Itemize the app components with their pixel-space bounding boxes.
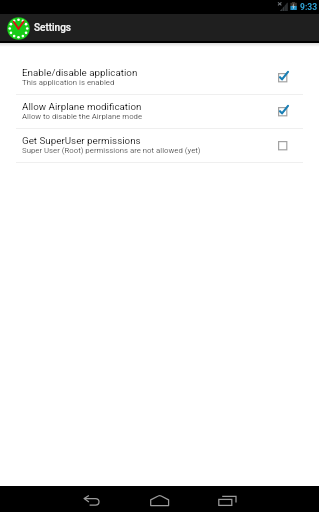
- button[interactable]: Toggle: [278, 136, 296, 154]
- staticText: Settings: [34, 22, 72, 34]
- staticText: 9:33: [300, 2, 318, 12]
- button[interactable]: Recent apps: [204, 488, 251, 512]
- staticText: Enable/disable application: [22, 67, 138, 78]
- button[interactable]: Enable/disable application: [0, 60, 319, 93]
- button[interactable]: Toggle: [278, 68, 296, 86]
- staticText: Allow Airplane modification: [22, 101, 142, 112]
- button[interactable]: Get SuperUser permissions: [0, 128, 319, 161]
- button[interactable]: Home: [136, 488, 183, 512]
- staticText: Allow to disable the Airplane mode: [22, 112, 143, 121]
- button[interactable]: Back: [68, 489, 115, 512]
- staticText: Super User (Root) permissions are not al…: [22, 146, 201, 155]
- button[interactable]: Toggle: [278, 102, 296, 120]
- button[interactable]: Allow Airplane modification: [0, 94, 319, 127]
- staticText: This application is enabled: [22, 78, 115, 87]
- staticText: Get SuperUser permissions: [22, 135, 141, 146]
